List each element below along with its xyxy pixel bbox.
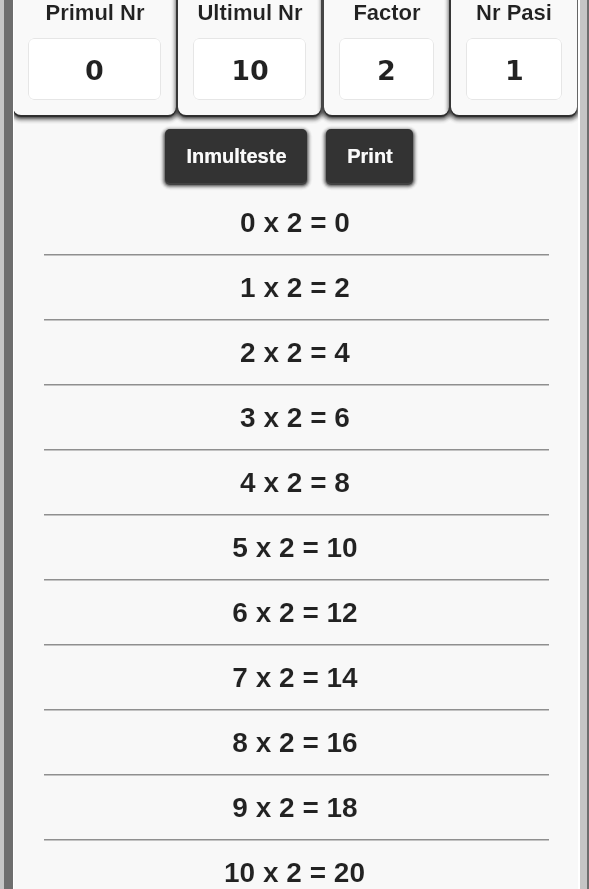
- button[interactable]: 5 x 2 = 10: [0, 515, 589, 580]
- staticText: 8 x 2 = 16: [232, 727, 358, 758]
- button[interactable]: 9 x 2 = 18: [0, 775, 589, 840]
- staticText: 7 x 2 = 14: [232, 662, 358, 693]
- staticText: 1: [505, 55, 524, 86]
- button[interactable]: 8 x 2 = 16: [0, 710, 589, 775]
- staticText: Print: [347, 145, 393, 167]
- button[interactable]: 7 x 2 = 14: [0, 645, 589, 710]
- button[interactable]: 4 x 2 = 8: [0, 450, 589, 515]
- staticText: 3 x 2 = 6: [240, 402, 350, 433]
- button[interactable]: 0 x 2 = 0: [0, 190, 589, 255]
- button[interactable]: 2: [339, 38, 434, 100]
- staticText: 0: [85, 55, 104, 86]
- staticText: Primul Nr: [45, 0, 145, 25]
- button[interactable]: Nr Pasi: [451, 0, 577, 115]
- staticText: 0 x 2 = 0: [240, 207, 350, 238]
- button[interactable]: Inmulteste: [165, 129, 307, 183]
- staticText: 2: [377, 55, 396, 86]
- staticText: 1 x 2 = 2: [240, 272, 350, 303]
- staticText: 9 x 2 = 18: [232, 792, 358, 823]
- staticText: 10: [231, 55, 269, 86]
- button[interactable]: Print: [326, 129, 413, 183]
- staticText: 4 x 2 = 8: [240, 467, 350, 498]
- button[interactable]: Ultimul Nr: [178, 0, 321, 115]
- button[interactable]: 10: [193, 38, 306, 100]
- button[interactable]: 10 x 2 = 20: [0, 840, 589, 889]
- staticText: 5 x 2 = 10: [232, 532, 358, 563]
- button[interactable]: 3 x 2 = 6: [0, 385, 589, 450]
- button[interactable]: 6 x 2 = 12: [0, 580, 589, 645]
- staticText: Ultimul Nr: [197, 0, 303, 25]
- staticText: Inmulteste: [186, 145, 287, 167]
- button[interactable]: Factor: [324, 0, 449, 115]
- staticText: Factor: [353, 0, 421, 25]
- button[interactable]: 0: [28, 38, 161, 100]
- button[interactable]: 1: [466, 38, 562, 100]
- staticText: Nr Pasi: [476, 0, 552, 25]
- button[interactable]: 2 x 2 = 4: [0, 320, 589, 385]
- button[interactable]: Primul Nr: [13, 0, 176, 115]
- staticText: 2 x 2 = 4: [240, 337, 350, 368]
- staticText: 6 x 2 = 12: [232, 597, 358, 628]
- staticText: 10 x 2 = 20: [224, 857, 365, 888]
- button[interactable]: 1 x 2 = 2: [0, 255, 589, 320]
